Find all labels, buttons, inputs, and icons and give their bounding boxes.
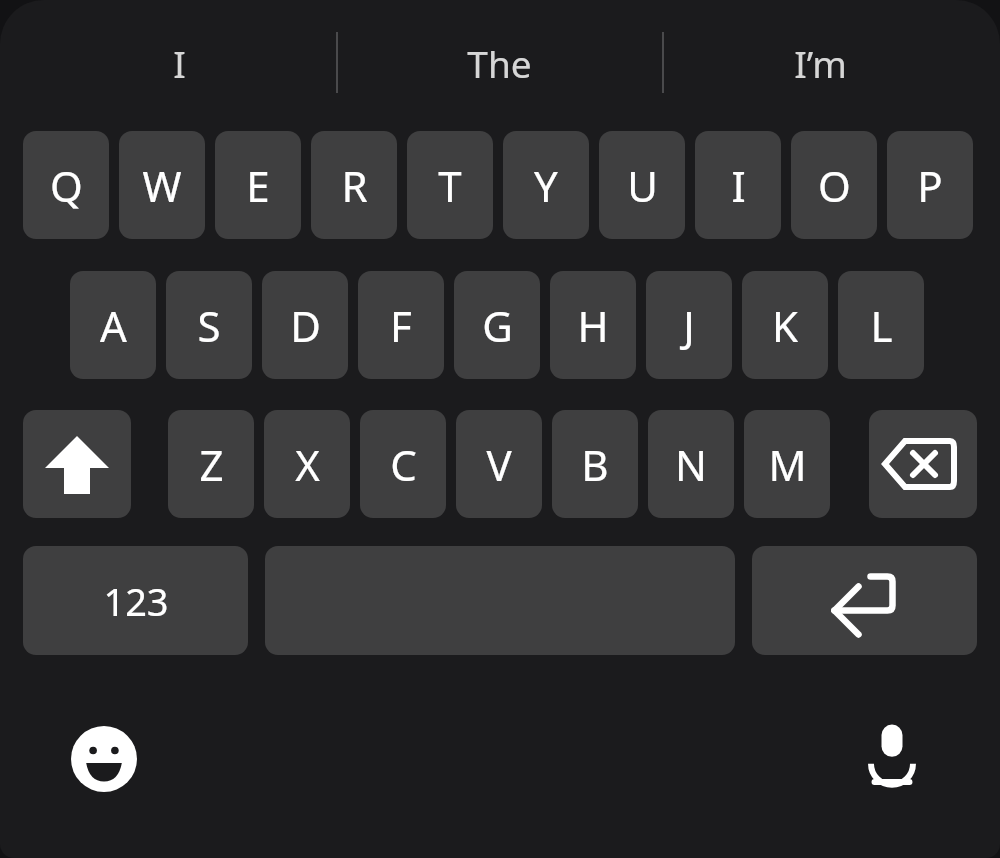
button[interactable]: Q	[23, 131, 109, 239]
button[interactable]: C	[360, 410, 446, 518]
button[interactable]: E	[215, 131, 301, 239]
staticText: I’m	[794, 38, 847, 88]
staticText: H	[577, 297, 609, 354]
staticText: The	[467, 38, 532, 88]
button[interactable]: Enter	[752, 546, 977, 655]
staticText: P	[917, 157, 943, 214]
button[interactable]: Y	[503, 131, 589, 239]
button[interactable]: I’m	[663, 22, 977, 104]
staticText: Y	[534, 157, 558, 214]
staticText: V	[486, 436, 512, 493]
staticText: E	[246, 157, 270, 214]
staticText: X	[295, 436, 320, 493]
staticText: U	[627, 157, 658, 214]
staticText: G	[482, 297, 513, 354]
button[interactable]: J	[646, 271, 732, 379]
button[interactable]: L	[838, 271, 924, 379]
staticText: Z	[199, 436, 224, 493]
staticText: S	[197, 297, 221, 354]
button[interactable]: D	[262, 271, 348, 379]
button[interactable]: H	[550, 271, 636, 379]
button[interactable]: B	[552, 410, 638, 518]
staticText: N	[675, 436, 707, 493]
button[interactable]: R	[311, 131, 397, 239]
staticText: C	[390, 436, 417, 493]
staticText: R	[341, 157, 368, 214]
button[interactable]: U	[599, 131, 685, 239]
button[interactable]: Shift	[23, 410, 131, 518]
button[interactable]: M	[744, 410, 830, 518]
button[interactable]: N	[648, 410, 734, 518]
staticText: I	[173, 38, 186, 88]
button[interactable]: Emoji	[58, 713, 150, 805]
button[interactable]: O	[791, 131, 877, 239]
button[interactable]: Backspace	[869, 410, 977, 518]
staticText: D	[290, 297, 321, 354]
staticText: K	[772, 297, 798, 354]
button[interactable]: T	[407, 131, 493, 239]
button[interactable]: 123	[23, 546, 248, 655]
staticText: L	[870, 297, 893, 354]
button[interactable]: Voice input	[846, 708, 938, 800]
button[interactable]: Z	[168, 410, 254, 518]
staticText: W	[142, 157, 182, 214]
button[interactable]: V	[456, 410, 542, 518]
button[interactable]: K	[742, 271, 828, 379]
button[interactable]: G	[454, 271, 540, 379]
button[interactable]: P	[887, 131, 973, 239]
button[interactable]: S	[166, 271, 252, 379]
staticText: T	[438, 157, 462, 214]
staticText: Q	[50, 157, 83, 214]
staticText: 123	[103, 575, 169, 627]
staticText: F	[390, 297, 412, 354]
button[interactable]: The	[337, 22, 661, 104]
staticText: O	[818, 157, 851, 214]
staticText: B	[581, 436, 609, 493]
button[interactable]: F	[358, 271, 444, 379]
button[interactable]: I	[23, 22, 335, 104]
button[interactable]: X	[264, 410, 350, 518]
staticText: A	[100, 297, 127, 354]
staticText: I	[731, 157, 746, 214]
button[interactable]: I	[695, 131, 781, 239]
staticText: J	[683, 297, 695, 354]
button[interactable]: A	[70, 271, 156, 379]
button[interactable]: W	[119, 131, 205, 239]
staticText: M	[768, 436, 807, 493]
